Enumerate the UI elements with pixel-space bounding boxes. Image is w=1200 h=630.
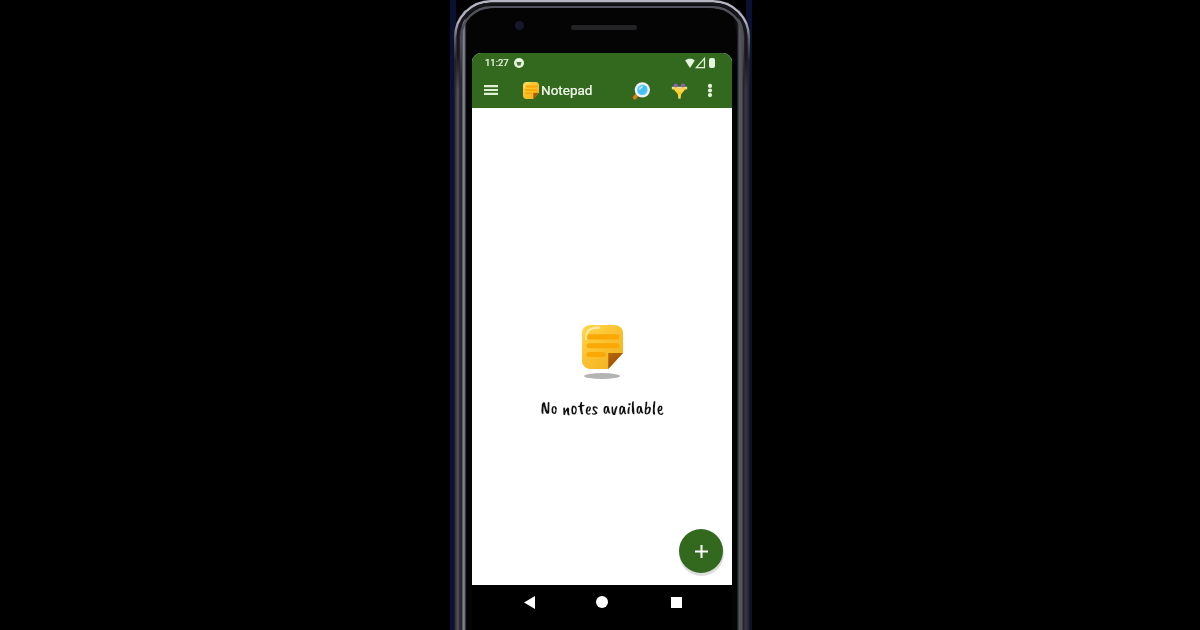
staticText: Notepad (541, 82, 593, 98)
button[interactable]: Search (626, 75, 656, 105)
button[interactable]: Back (512, 585, 546, 619)
button[interactable]: Open navigation menu (475, 74, 507, 106)
button[interactable]: Add note (679, 529, 723, 573)
staticText: 11:27 (485, 57, 509, 68)
button[interactable]: Home (585, 585, 619, 619)
button[interactable]: Recents (659, 585, 693, 619)
button[interactable]: More options (697, 77, 723, 103)
staticText: No notes available (540, 396, 664, 420)
button[interactable]: Filter notes (664, 75, 694, 105)
